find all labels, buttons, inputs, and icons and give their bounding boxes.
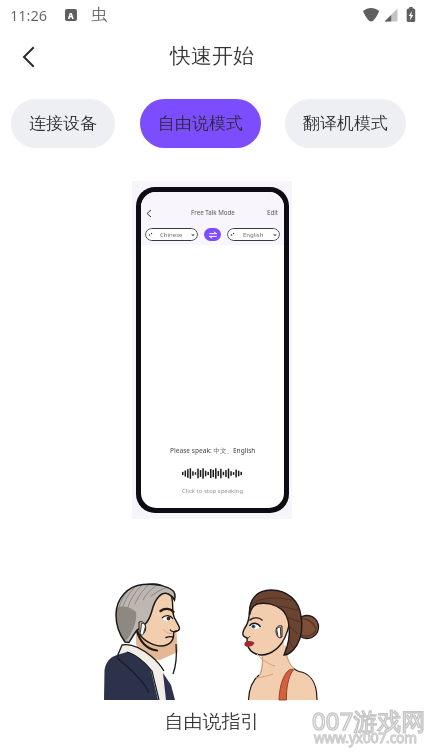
button[interactable]: Back xyxy=(143,207,155,219)
staticText: 自由说模式 xyxy=(158,113,243,134)
staticText: 快速开始 xyxy=(170,43,254,69)
staticText: 虫 xyxy=(91,5,107,25)
staticText: Free Talk Mode xyxy=(191,208,235,216)
staticText: English xyxy=(243,231,264,239)
button[interactable]: Chinese xyxy=(145,228,198,241)
button[interactable]: 自由说模式 xyxy=(140,99,261,148)
staticText: Please speak: 中文、English xyxy=(170,446,256,455)
staticText: Edit xyxy=(267,208,279,216)
button[interactable]: 连接设备 xyxy=(11,99,115,148)
staticText: Chinese xyxy=(160,231,183,239)
staticText: 翻译机模式 xyxy=(303,113,388,134)
button[interactable]: 翻译机模式 xyxy=(285,99,406,148)
staticText: 11:26 xyxy=(10,5,48,25)
staticText: 连接设备 xyxy=(29,113,97,134)
button[interactable]: English xyxy=(227,228,280,241)
staticText: Click to stop speaking xyxy=(182,487,244,495)
button[interactable]: Swap languages xyxy=(204,228,221,241)
staticText: A xyxy=(68,10,74,21)
button[interactable]: Back xyxy=(5,33,52,80)
staticText: 自由说指引 xyxy=(0,710,424,734)
